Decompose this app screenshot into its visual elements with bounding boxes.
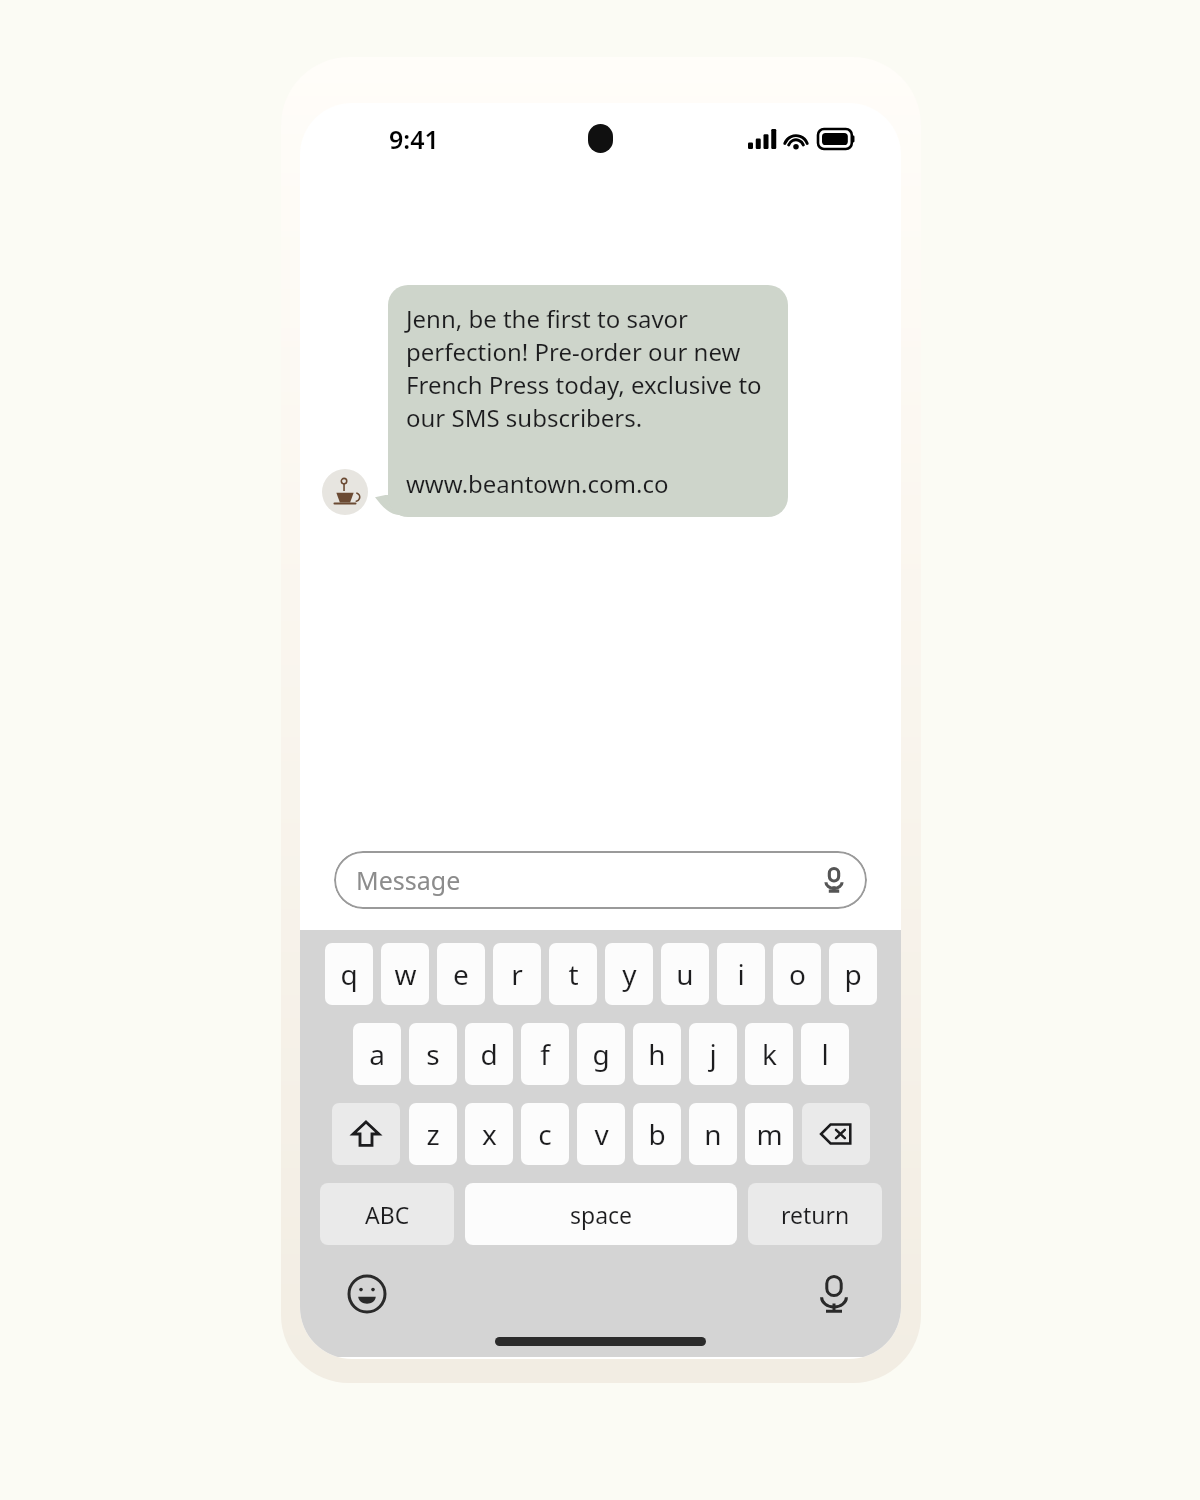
button[interactable]: z [409,1103,457,1165]
button[interactable]: h [633,1023,681,1085]
button[interactable]: Emoji [344,1271,390,1317]
staticText: b [648,1115,666,1153]
button[interactable]: o [773,943,821,1005]
button[interactable]: v [577,1103,625,1165]
button[interactable]: x [465,1103,513,1165]
button[interactable]: m [745,1103,793,1165]
button[interactable]: l [801,1023,849,1085]
button[interactable]: p [829,943,877,1005]
button[interactable]: Backspace [802,1103,870,1165]
staticText: c [538,1115,552,1153]
staticText: r [511,955,523,993]
button[interactable]: e [437,943,485,1005]
button[interactable]: return [748,1183,882,1245]
staticText: space [570,1199,633,1230]
staticText: k [762,1035,777,1073]
button[interactable]: Voice typing [811,1271,857,1317]
button[interactable]: t [549,943,597,1005]
staticText: q [340,955,358,993]
button[interactable]: n [689,1103,737,1165]
button[interactable]: g [577,1023,625,1085]
button[interactable]: ABC [320,1183,454,1245]
staticText: l [821,1035,829,1073]
staticText: return [781,1199,850,1230]
staticText: Message [356,863,819,897]
staticText: j [709,1035,717,1073]
staticText: 9:41 [389,122,439,156]
button[interactable]: Shift [332,1103,400,1165]
button[interactable]: space [465,1183,737,1245]
button[interactable]: y [605,943,653,1005]
staticText: z [426,1115,440,1153]
button[interactable]: Message [334,851,867,909]
staticText: o [789,955,806,993]
staticText: e [453,955,469,993]
button[interactable]: k [745,1023,793,1085]
staticText: x [482,1115,497,1153]
button[interactable]: c [521,1103,569,1165]
staticText: i [737,955,745,993]
button[interactable]: Jenn, be the first to savor perfection! … [388,285,788,517]
staticText: y [622,955,637,993]
staticText: d [480,1035,498,1073]
button[interactable]: s [409,1023,457,1085]
staticText: g [592,1035,610,1073]
staticText: u [676,955,694,993]
staticText: m [756,1115,783,1153]
button[interactable]: i [717,943,765,1005]
other: Beantown avatar [322,469,368,515]
staticText: f [540,1035,550,1073]
button[interactable]: r [493,943,541,1005]
button[interactable]: b [633,1103,681,1165]
staticText: s [426,1035,440,1073]
staticText: www.beantown.com.co [406,467,669,500]
staticText: n [704,1115,722,1153]
staticText: w [394,955,417,993]
staticText: Jenn, be the first to savor perfection! … [406,302,770,434]
other: Voice input [819,865,849,895]
staticText: v [594,1115,609,1153]
button[interactable]: a [353,1023,401,1085]
staticText: t [568,955,579,993]
staticText: p [844,955,862,993]
button[interactable]: d [465,1023,513,1085]
button[interactable]: w [381,943,429,1005]
button[interactable]: f [521,1023,569,1085]
button[interactable]: q [325,943,373,1005]
staticText: h [648,1035,666,1073]
staticText: ABC [365,1199,410,1230]
button[interactable]: u [661,943,709,1005]
staticText: a [369,1035,385,1073]
button[interactable]: j [689,1023,737,1085]
